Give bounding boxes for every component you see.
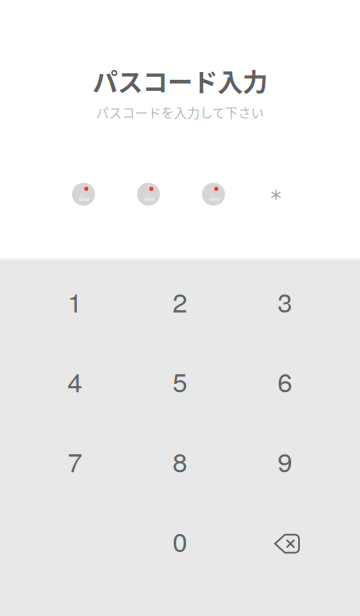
staticText: 3 [277,282,292,320]
button[interactable]: 1 [22,261,127,341]
button[interactable]: 0 [127,500,232,580]
button[interactable]: 3 [232,261,337,341]
button[interactable]: 7 [22,421,127,500]
button[interactable]: 2 [127,261,232,341]
staticText: 2 [172,282,187,320]
button[interactable]: 6 [232,341,337,421]
staticText: 7 [67,441,82,480]
staticText: 5 [172,362,187,400]
staticText: パスコード入力 [92,62,267,99]
staticText: 1 [67,282,82,320]
button[interactable]: 9 [232,421,337,500]
button[interactable]: Delete [232,500,337,580]
staticText: 0 [172,521,187,560]
staticText: 6 [277,362,292,400]
button[interactable]: 8 [127,421,232,500]
staticText: 4 [67,362,82,400]
staticText: 8 [172,441,187,480]
staticText: 9 [277,441,292,480]
button[interactable]: 4 [22,341,127,421]
button[interactable]: 5 [127,341,232,421]
staticText: パスコードを入力して下さい [96,103,264,121]
